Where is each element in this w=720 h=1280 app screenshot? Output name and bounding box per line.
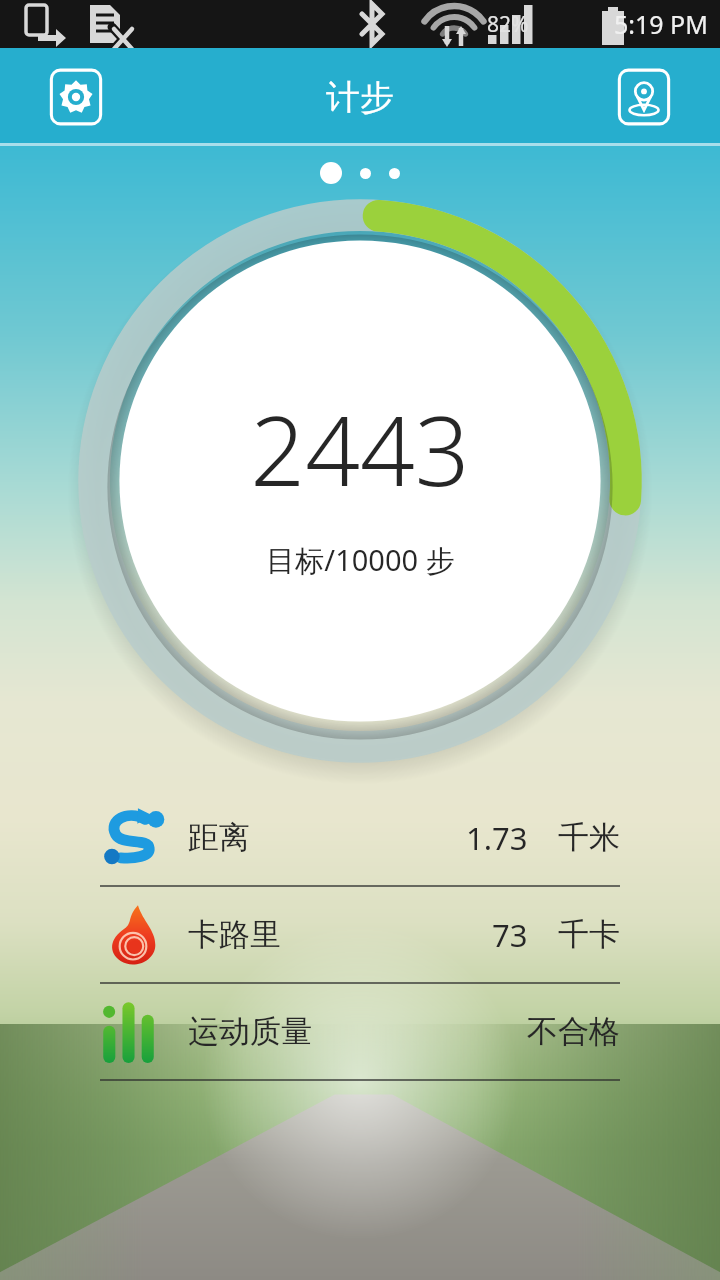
staticText: 卡路里 (188, 915, 281, 954)
staticText: 目标/10000 步 (266, 540, 455, 580)
staticText: 5:19 PM (614, 7, 708, 41)
button[interactable]: Location (616, 69, 672, 125)
button[interactable]: 距离 (100, 790, 620, 887)
staticText: 运动质量 (188, 1012, 312, 1051)
staticText: 千卡 (558, 915, 620, 954)
staticText: 千米 (558, 818, 620, 857)
staticText: 2443 (250, 383, 470, 514)
staticText: 82% (487, 10, 529, 39)
staticText: 不合格 (527, 1012, 620, 1051)
button[interactable]: 卡路里 (100, 887, 620, 984)
button[interactable]: Settings (48, 69, 104, 125)
staticText: 73 (492, 914, 528, 956)
staticText: 计步 (326, 76, 394, 119)
button[interactable]: 运动质量 (100, 984, 620, 1081)
staticText: 1.73 (466, 817, 528, 859)
staticText: 距离 (188, 818, 250, 857)
